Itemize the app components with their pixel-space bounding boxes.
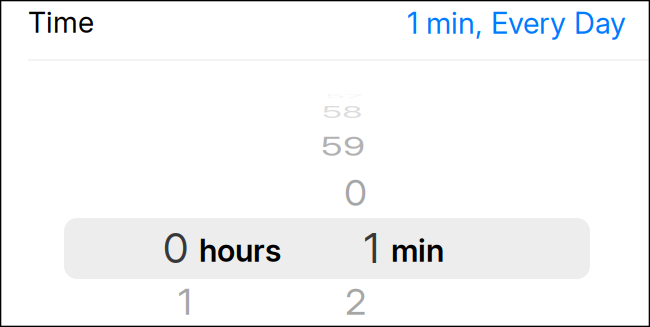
staticText: 1 [178,279,192,325]
staticText: min [391,232,444,269]
staticText: 1 [364,223,379,273]
staticText: hours [199,232,281,269]
button[interactable]: 1 [264,61,590,326]
staticText: 1 min, Every Day [407,5,626,41]
button[interactable]: Time [0,0,650,59]
staticText: Time [28,5,94,40]
staticText: 0 [163,223,188,273]
staticText: 2 [345,279,366,325]
staticText: 59 [321,123,365,169]
staticText: 0 [344,170,367,216]
staticText: 58 [322,91,363,133]
staticText: 57 [325,75,363,117]
button[interactable]: 0 [64,61,264,326]
